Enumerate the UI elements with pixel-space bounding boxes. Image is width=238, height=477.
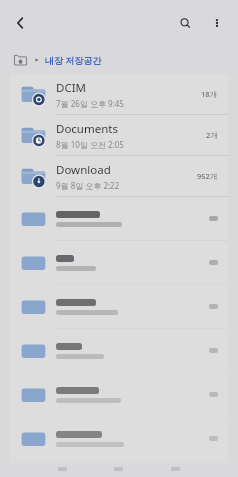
button[interactable]: Documents [10,115,228,155]
button[interactable] [10,241,228,284]
staticText: 9월 8일 오후 2:22 [56,180,120,191]
button[interactable]: Home [12,52,28,68]
button[interactable] [10,197,228,240]
button[interactable] [10,373,228,416]
button[interactable] [10,417,228,460]
staticText: DCIM [56,80,86,96]
button[interactable]: 내장 저장공간 [45,54,102,66]
staticText: 7월 26일 오후 9:45 [56,98,124,109]
button[interactable]: Search [170,8,200,38]
button[interactable]: More options [202,8,232,38]
button[interactable]: Back [6,8,36,38]
staticText: 8월 10일 오전 2:05 [56,139,124,150]
staticText: Download [56,162,111,178]
staticText: Documents [56,121,118,137]
button[interactable] [10,329,228,372]
button[interactable]: DCIM [10,74,228,114]
button[interactable] [10,285,228,328]
staticText: 18개 [201,89,218,99]
staticText: 2개 [206,130,218,140]
button[interactable]: Download [10,156,228,196]
staticText: 952개 [197,171,218,181]
staticText: 내장 저장공간 [45,54,102,66]
